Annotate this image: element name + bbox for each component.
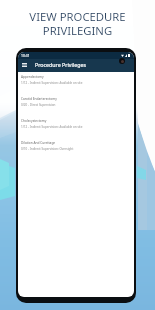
staticText: Carotid Endarterectomy bbox=[21, 97, 57, 101]
staticText: VIEW PROCEDURE PRIVILEGING bbox=[29, 9, 126, 39]
staticText: 1/12 - Indirect Supervision: Available o… bbox=[21, 125, 83, 129]
button[interactable]: Carotid Endarterectomy bbox=[18, 94, 134, 116]
staticText: Cholecystectomy bbox=[21, 119, 47, 123]
staticText: 0/20 - Direct Supervision bbox=[21, 103, 56, 107]
button[interactable]: Open navigation menu bbox=[21, 61, 28, 68]
button[interactable]: Cholecystectomy bbox=[18, 116, 134, 138]
staticText: Dilation And Curettage bbox=[21, 141, 56, 145]
staticText: 0/10 - Indirect Supervision: Oversight bbox=[21, 147, 74, 151]
staticText: Appendectomy bbox=[21, 75, 44, 79]
button[interactable]: Dilation And Curettage bbox=[18, 138, 134, 160]
staticText: Procedure Privileges bbox=[35, 61, 86, 68]
button[interactable]: Account bbox=[119, 58, 125, 64]
staticText: 1/12 - Indirect Supervision: Available o… bbox=[21, 81, 83, 85]
button[interactable]: Appendectomy bbox=[18, 72, 134, 94]
staticText: 10:31 bbox=[21, 53, 30, 58]
